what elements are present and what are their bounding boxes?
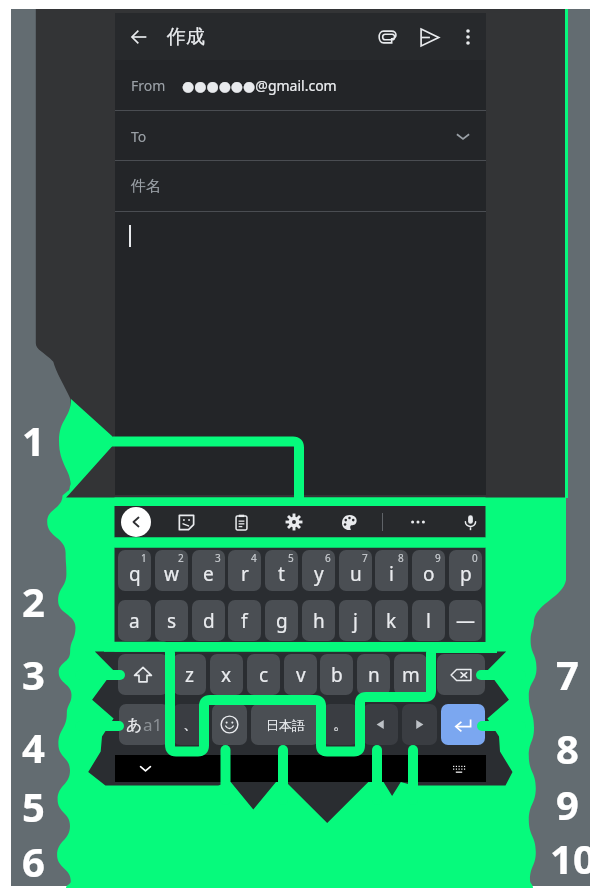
staticText: k: [386, 608, 397, 634]
staticText: u: [350, 561, 362, 587]
staticText: q: [129, 561, 141, 587]
staticText: 5: [22, 779, 45, 833]
staticText: z: [185, 662, 194, 688]
button[interactable]: To: [115, 111, 486, 161]
button[interactable]: Voice input: [454, 506, 486, 538]
staticText: 4: [251, 551, 257, 565]
staticText: 9: [435, 551, 441, 565]
button[interactable]: j: [339, 600, 372, 641]
button[interactable]: g: [265, 600, 298, 641]
button[interactable]: 9: [412, 550, 445, 591]
button[interactable]: 件名: [115, 161, 486, 212]
staticText: —: [456, 608, 476, 634]
button[interactable]: c: [247, 654, 280, 695]
button[interactable]: h: [302, 600, 335, 641]
button[interactable]: 。: [323, 704, 358, 745]
staticText: h: [313, 608, 325, 634]
staticText: 7: [362, 551, 368, 565]
button[interactable]: f: [228, 600, 261, 641]
staticText: 日本語: [266, 717, 305, 733]
staticText: To: [131, 127, 147, 146]
button[interactable]: Key: [363, 704, 398, 745]
button[interactable]: [115, 212, 486, 495]
button[interactable]: 7: [339, 550, 372, 591]
staticText: 2: [178, 551, 184, 565]
staticText: e: [203, 561, 214, 587]
staticText: b: [331, 662, 343, 688]
button[interactable]: x: [210, 654, 243, 695]
staticText: 1: [22, 413, 45, 467]
staticText: 0: [472, 551, 478, 565]
staticText: a1: [143, 713, 163, 736]
button[interactable]: d: [192, 600, 225, 641]
button[interactable]: Key: [402, 704, 437, 745]
button[interactable]: Change keyboard: [445, 755, 472, 782]
button[interactable]: 1: [118, 550, 151, 591]
staticText: 8: [398, 551, 404, 565]
staticText: t: [278, 561, 285, 587]
staticText: o: [423, 561, 435, 587]
staticText: 件名: [131, 177, 161, 196]
staticText: j: [353, 608, 358, 634]
button[interactable]: Clipboard: [225, 506, 257, 538]
button[interactable]: m: [394, 654, 427, 695]
staticText: p: [460, 561, 472, 587]
staticText: 3: [215, 551, 221, 565]
button[interactable]: n: [357, 654, 390, 695]
button[interactable]: More: [402, 506, 434, 538]
button[interactable]: Attach file: [366, 16, 408, 58]
staticText: 2: [22, 574, 45, 628]
staticText: d: [203, 608, 215, 634]
staticText: g: [276, 608, 288, 634]
button[interactable]: From: [115, 60, 486, 111]
button[interactable]: Themes: [333, 506, 365, 538]
button[interactable]: 、: [173, 704, 208, 745]
staticText: w: [164, 561, 179, 587]
button[interactable]: Send: [408, 16, 450, 58]
staticText: r: [241, 561, 249, 587]
staticText: l: [426, 608, 431, 634]
button[interactable]: b: [320, 654, 353, 695]
button[interactable]: 4: [228, 550, 261, 591]
staticText: n: [368, 662, 380, 688]
staticText: 4: [22, 720, 45, 774]
button[interactable]: s: [155, 600, 188, 641]
staticText: 3: [22, 647, 45, 701]
button[interactable]: Hide keyboard: [132, 755, 159, 782]
button[interactable]: Stickers: [170, 506, 202, 538]
staticText: 1: [141, 551, 147, 565]
button[interactable]: Key: [437, 654, 485, 695]
button[interactable]: 8: [375, 550, 408, 591]
button[interactable]: 0: [449, 550, 482, 591]
staticText: ●●●●●●@gmail.com: [182, 76, 337, 95]
button[interactable]: 3: [192, 550, 225, 591]
staticText: a: [129, 608, 140, 634]
button[interactable]: z: [173, 654, 206, 695]
button[interactable]: 日本語: [251, 704, 319, 745]
button[interactable]: Key: [212, 704, 247, 745]
button[interactable]: Key: [441, 704, 485, 745]
button[interactable]: l: [412, 600, 445, 641]
button[interactable]: Key: [118, 654, 168, 695]
button[interactable]: k: [375, 600, 408, 641]
staticText: i: [389, 561, 394, 587]
staticText: 。: [333, 715, 348, 734]
staticText: 8: [556, 721, 579, 775]
button[interactable]: 6: [302, 550, 335, 591]
staticText: c: [259, 662, 269, 688]
button[interactable]: Back: [117, 15, 161, 59]
button[interactable]: a: [118, 600, 151, 641]
staticText: s: [167, 608, 177, 634]
staticText: m: [402, 662, 420, 688]
button[interactable]: Settings: [278, 506, 310, 538]
button[interactable]: —: [449, 600, 482, 641]
staticText: 9: [556, 777, 579, 831]
button[interactable]: 5: [265, 550, 298, 591]
button[interactable]: v: [284, 654, 317, 695]
button[interactable]: あ: [119, 704, 169, 745]
button[interactable]: More options: [450, 19, 486, 55]
button[interactable]: Collapse toolbar: [121, 507, 151, 537]
staticText: x: [221, 662, 232, 688]
button[interactable]: 2: [155, 550, 188, 591]
staticText: 作成: [167, 25, 205, 49]
